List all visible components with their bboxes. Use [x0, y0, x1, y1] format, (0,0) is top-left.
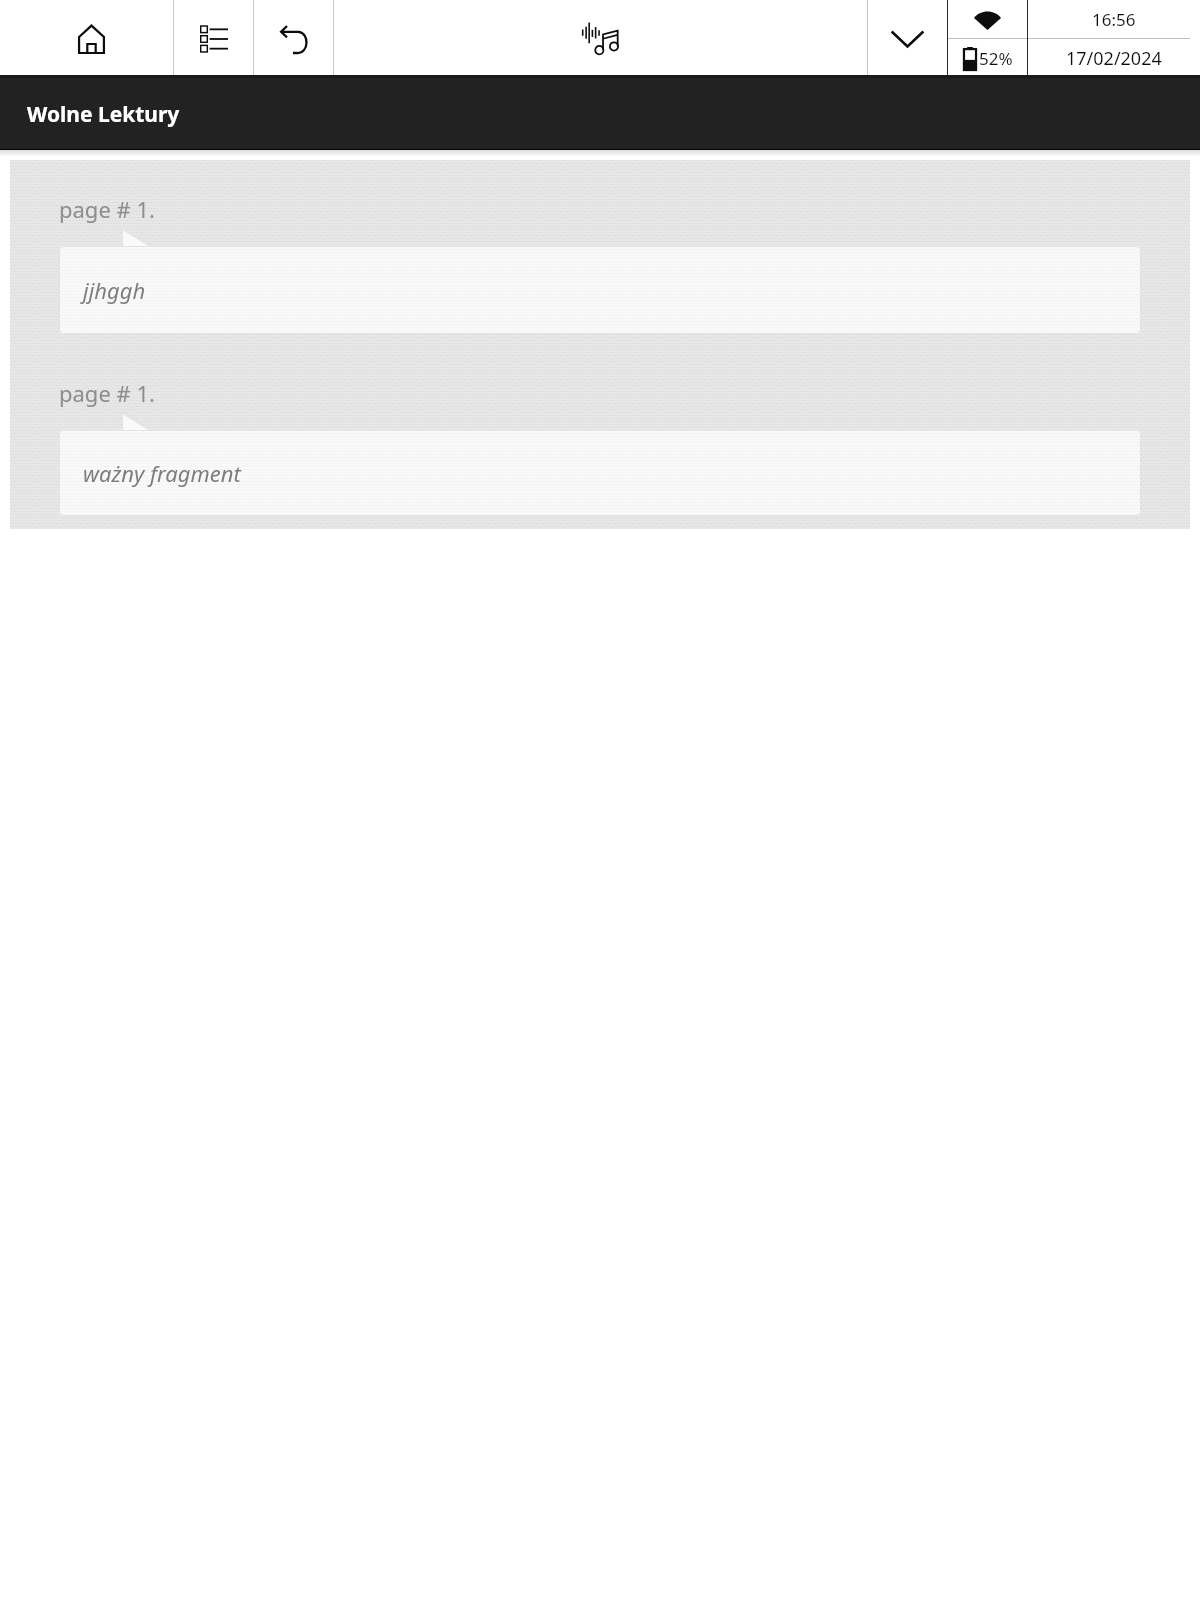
staticText: 52%	[979, 47, 1013, 70]
button[interactable]: Music	[334, 0, 867, 78]
button[interactable]: jjhggh	[59, 246, 1141, 334]
button[interactable]: ważny fragment	[59, 430, 1141, 516]
staticText: page # 1.	[59, 194, 155, 224]
staticText: page # 1.	[59, 378, 155, 408]
staticText: 16:56	[1092, 8, 1136, 31]
button[interactable]: Back	[254, 0, 333, 78]
button[interactable]: Home	[0, 0, 173, 78]
button[interactable]: Expand	[868, 0, 947, 78]
button[interactable]: Table of contents	[174, 0, 253, 78]
staticText: Wolne Lektury	[27, 100, 180, 129]
staticText: 17/02/2024	[1066, 46, 1162, 71]
staticText: jjhggh	[83, 275, 146, 305]
staticText: ważny fragment	[83, 458, 241, 488]
